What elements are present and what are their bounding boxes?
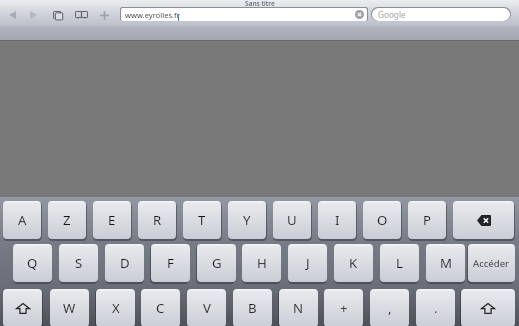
button[interactable]: G: [197, 244, 236, 282]
staticText: O: [377, 211, 388, 229]
staticText: A: [18, 211, 27, 229]
button[interactable]: Y: [228, 201, 266, 239]
staticText: F: [167, 254, 174, 272]
button[interactable]: Z: [48, 201, 86, 239]
staticText: S: [75, 254, 83, 272]
staticText: H: [257, 254, 267, 272]
staticText: Google: [378, 9, 406, 20]
button[interactable]: V: [187, 289, 226, 326]
button[interactable]: P: [408, 201, 446, 239]
staticText: .: [434, 299, 438, 317]
staticText: B: [248, 299, 257, 317]
staticText: D: [120, 254, 130, 272]
staticText: K: [349, 254, 358, 272]
staticText: www.eyrolles.fr: [125, 10, 180, 20]
button[interactable]: ,: [370, 289, 409, 326]
button[interactable]: +: [324, 289, 363, 326]
button[interactable]: M: [426, 244, 465, 282]
button[interactable]: W: [50, 289, 89, 326]
staticText: M: [440, 254, 452, 272]
staticText: ,: [388, 299, 392, 317]
button[interactable]: H: [242, 244, 281, 282]
button[interactable]: U: [273, 201, 311, 239]
button[interactable]: Back: [2, 3, 23, 27]
staticText: T: [198, 211, 206, 229]
button[interactable]: I: [318, 201, 356, 239]
staticText: N: [293, 299, 304, 317]
staticText: V: [203, 299, 211, 317]
button[interactable]: Shift right: [461, 289, 515, 326]
button[interactable]: B: [233, 289, 272, 326]
staticText: +: [340, 299, 348, 317]
staticText: P: [423, 211, 431, 229]
staticText: R: [153, 211, 162, 229]
button[interactable]: A: [3, 201, 41, 239]
button[interactable]: Google: [372, 8, 510, 21]
staticText: I: [335, 211, 340, 229]
button[interactable]: Clear: [355, 10, 364, 19]
staticText: Y: [243, 211, 251, 229]
staticText: C: [156, 299, 165, 317]
button[interactable]: D: [105, 244, 144, 282]
button[interactable]: F: [151, 244, 190, 282]
staticText: Accéder: [473, 257, 510, 270]
button[interactable]: New tab: [94, 3, 115, 27]
button[interactable]: Forward: [23, 3, 44, 27]
staticText: J: [306, 254, 310, 272]
button[interactable]: Bookmarks: [71, 2, 92, 26]
button[interactable]: C: [141, 289, 180, 326]
button[interactable]: K: [334, 244, 373, 282]
button[interactable]: L: [380, 244, 419, 282]
button[interactable]: Shift: [3, 289, 42, 326]
staticText: L: [396, 254, 403, 272]
staticText: W: [63, 299, 76, 317]
button[interactable]: Accéder: [468, 244, 515, 282]
button[interactable]: S: [59, 244, 98, 282]
button[interactable]: R: [138, 201, 176, 239]
button[interactable]: Q: [13, 244, 52, 282]
button[interactable]: Pages: [47, 3, 68, 27]
staticText: Sans titre: [245, 0, 275, 6]
button[interactable]: O: [363, 201, 401, 239]
button[interactable]: T: [183, 201, 221, 239]
button[interactable]: .: [416, 289, 455, 326]
staticText: G: [212, 254, 222, 272]
staticText: Z: [63, 211, 71, 229]
button[interactable]: E: [93, 201, 131, 239]
button[interactable]: N: [279, 289, 318, 326]
staticText: U: [287, 211, 297, 229]
button[interactable]: J: [288, 244, 327, 282]
staticText: Q: [27, 254, 38, 272]
button[interactable]: www.eyrolles.fr: [121, 8, 367, 21]
staticText: X: [112, 299, 120, 317]
staticText: E: [108, 211, 116, 229]
button[interactable]: Backspace: [453, 201, 514, 239]
button[interactable]: X: [96, 289, 135, 326]
